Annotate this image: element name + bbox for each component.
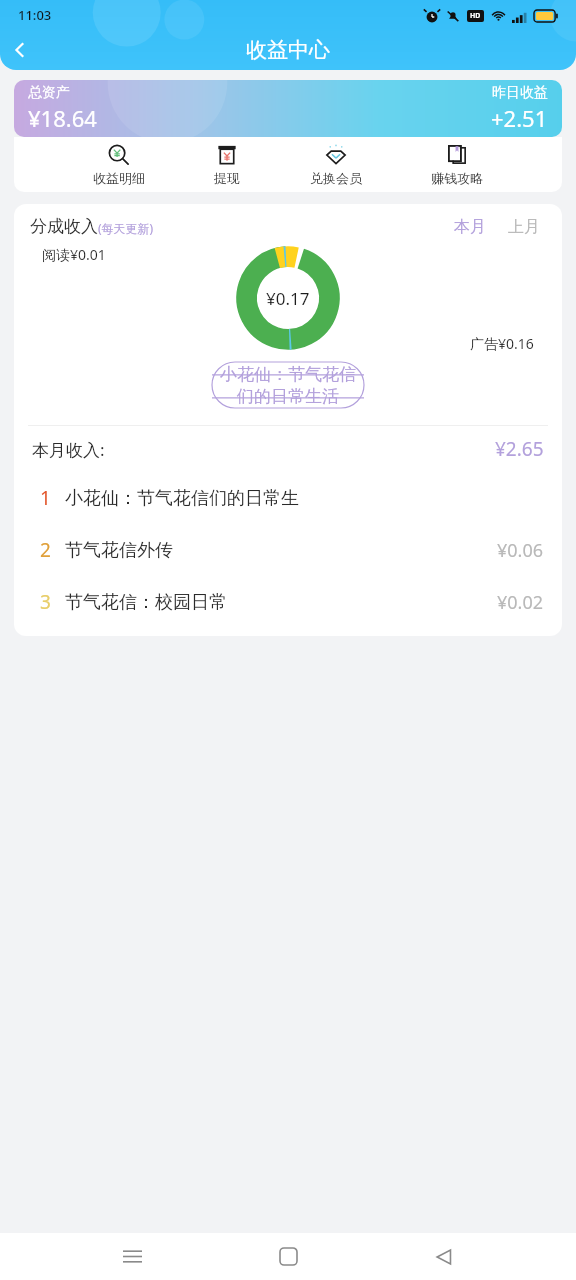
button[interactable]: Home [264,1233,312,1280]
button[interactable]: 2 [14,524,562,576]
button[interactable]: Recent apps [108,1233,156,1280]
button[interactable]: Back [0,30,40,70]
staticText: 总资产 [28,84,70,102]
staticText: 收益明细 [93,170,145,186]
staticText: 节气花信：校园日常 [65,591,227,614]
staticText: 兑换会员 [310,170,362,186]
button[interactable]: 赚钱攻略 [429,143,485,186]
staticText: HD [470,11,481,21]
staticText: 11:03 [18,6,52,24]
staticText: 赚钱攻略 [431,170,483,186]
button[interactable]: Back [420,1233,468,1280]
staticText: 阅读¥0.01 [42,245,106,264]
staticText: 小花仙：节气花信们的日常生 [65,487,299,510]
staticText: ¥0.17 [266,287,310,310]
staticText: 本月 [454,217,486,237]
staticText: ¥2.65 [495,436,544,462]
button[interactable]: 提现 [212,143,242,186]
staticText: (每天更新) [98,220,154,236]
staticText: 分成收入 [30,216,98,237]
staticText: 广告¥0.16 [470,334,534,353]
staticText: 3 [40,589,51,615]
staticText: 提现 [214,170,240,186]
button[interactable]: 3 [14,576,562,628]
button[interactable]: 收益明细 [91,143,147,186]
staticText: 1 [40,485,51,511]
staticText: 收益中心 [246,37,330,63]
staticText: ¥0.06 [497,538,544,563]
staticText: 小花仙：节气花信们的日常生活 [218,364,358,407]
staticText: +2.51 [491,103,548,133]
button[interactable]: 总资产 [14,80,562,137]
staticText: 本月收入: [32,438,105,461]
button[interactable]: 本月 [448,217,492,237]
staticText: 昨日收益 [492,84,548,102]
staticText: 2 [40,537,51,563]
button[interactable]: 1 [14,472,562,524]
staticText: ¥0.02 [497,590,544,615]
button[interactable]: 兑换会员 [308,143,364,186]
button[interactable]: 上月 [502,217,546,237]
staticText: 节气花信外传 [65,539,173,562]
staticText: 上月 [508,217,540,237]
staticText: ¥18.64 [28,103,97,133]
